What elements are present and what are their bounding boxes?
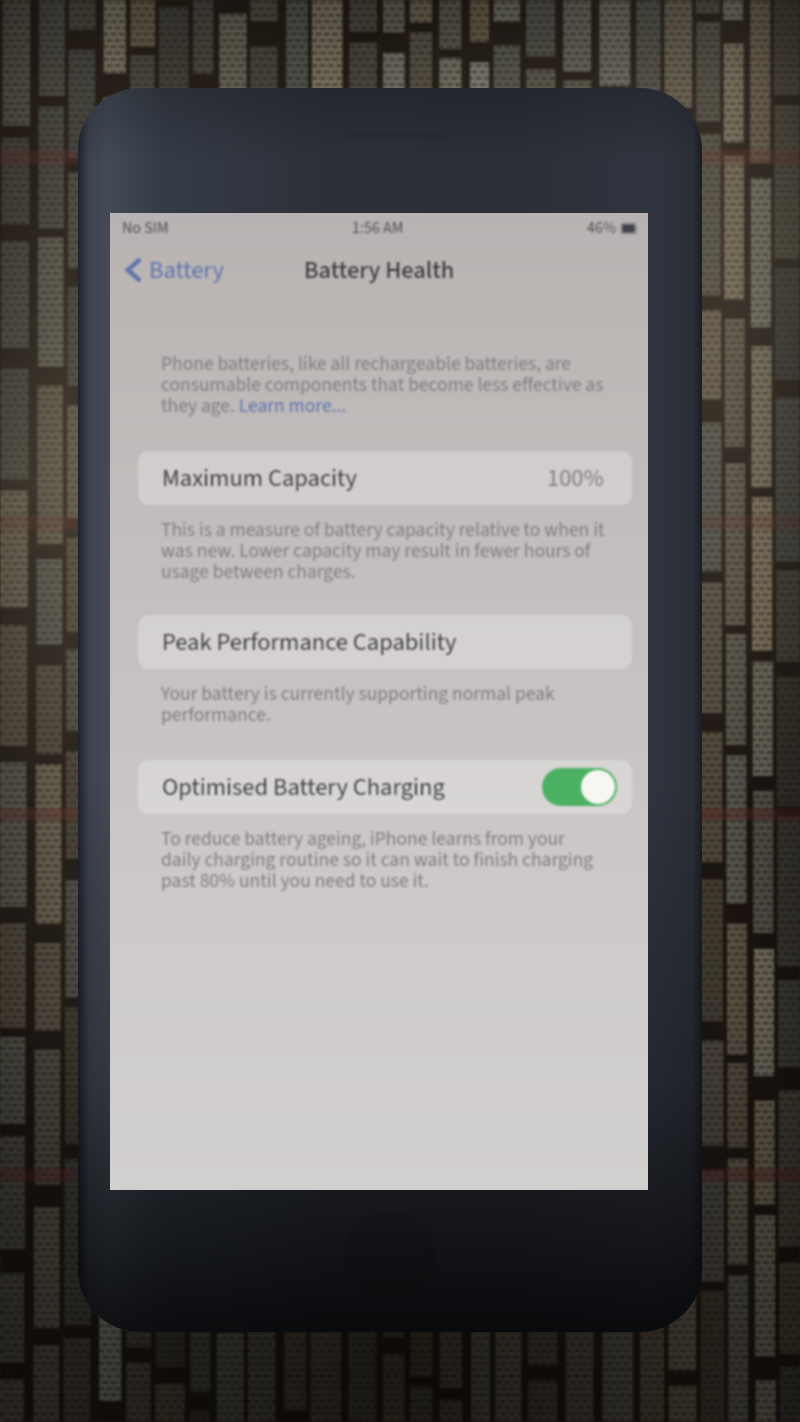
staticText: 100%: [547, 461, 604, 496]
button[interactable]: Optimised Battery Charging: [138, 760, 632, 814]
staticText: Optimised Battery Charging: [162, 770, 445, 805]
staticText: 1:56 AM: [352, 217, 404, 240]
staticText: 46%: [587, 217, 617, 240]
staticText: Battery: [149, 253, 224, 287]
button[interactable]: Optimised Battery Charging: [542, 768, 617, 806]
button[interactable]: Maximum Capacity: [138, 451, 632, 505]
staticText: To reduce battery ageing, iPhone learns …: [161, 825, 607, 895]
button[interactable]: Peak Performance Capability: [138, 615, 632, 669]
staticText: Your battery is currently supporting nor…: [161, 680, 607, 729]
staticText: Phone batteries, like all rechargeable b…: [161, 350, 607, 420]
staticText: No SIM: [122, 217, 169, 240]
staticText: This is a measure of battery capacity re…: [161, 516, 607, 586]
button[interactable]: Battery: [110, 246, 234, 294]
staticText: Maximum Capacity: [162, 461, 357, 496]
staticText: Battery Health: [304, 253, 455, 288]
staticText: Peak Performance Capability: [162, 625, 457, 660]
